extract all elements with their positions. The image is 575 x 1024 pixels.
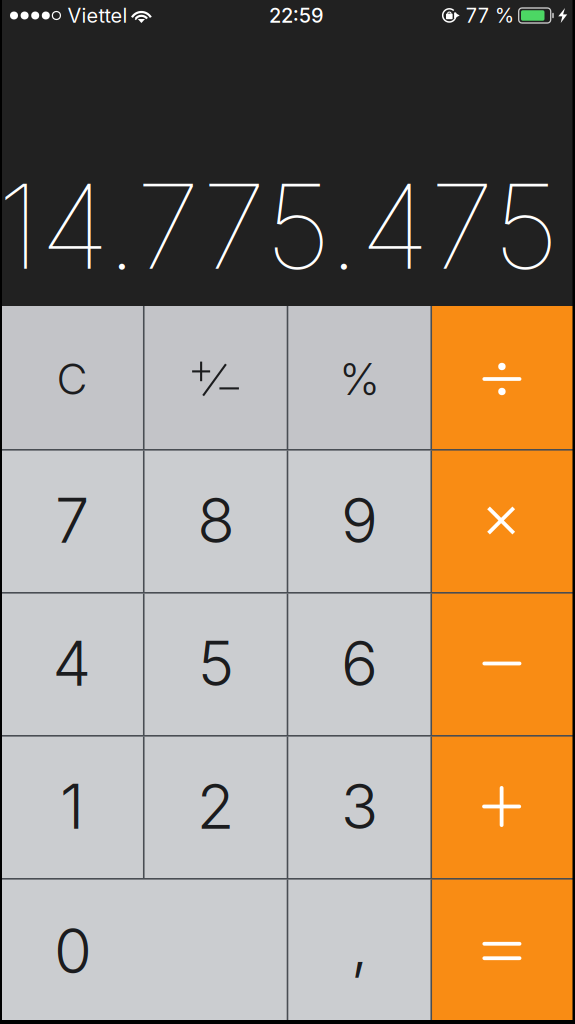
button[interactable]: 6 <box>287 592 431 735</box>
staticText: 22:59 <box>269 3 324 28</box>
button[interactable]: % <box>287 306 431 449</box>
staticText: Viettel <box>67 3 127 28</box>
button[interactable]: Plus <box>431 735 575 878</box>
button[interactable]: 9 <box>287 449 431 592</box>
button[interactable]: Equals <box>431 878 575 1024</box>
button[interactable]: 1 <box>0 735 144 878</box>
staticText: C <box>56 353 87 405</box>
button[interactable]: , <box>287 878 431 1024</box>
button[interactable]: 7 <box>0 449 144 592</box>
staticText: 7 <box>55 483 89 558</box>
button[interactable]: 0 <box>0 878 287 1024</box>
staticText: 5 <box>198 626 234 701</box>
staticText: % <box>339 352 380 406</box>
staticText: 0 <box>54 914 92 988</box>
staticText: 2 <box>197 769 235 844</box>
button[interactable]: Minus <box>431 592 575 735</box>
staticText: 4 <box>52 626 91 701</box>
button[interactable]: 8 <box>144 449 288 592</box>
staticText: 77 % <box>466 3 514 28</box>
button[interactable]: 3 <box>287 735 431 878</box>
button[interactable]: 4 <box>0 592 144 735</box>
staticText: , <box>351 908 368 983</box>
staticText: 8 <box>197 483 234 558</box>
staticText: 14.775.475 <box>0 155 559 297</box>
button[interactable]: Multiply <box>431 449 575 592</box>
button[interactable]: C <box>0 306 144 449</box>
staticText: 6 <box>341 626 378 701</box>
button[interactable]: Divide <box>431 306 575 449</box>
button[interactable]: 5 <box>144 592 288 735</box>
button[interactable]: 2 <box>144 735 288 878</box>
staticText: 1 <box>60 769 84 844</box>
staticText: 3 <box>341 769 378 844</box>
button[interactable]: Plus or minus <box>144 306 288 449</box>
staticText: 9 <box>341 483 378 558</box>
